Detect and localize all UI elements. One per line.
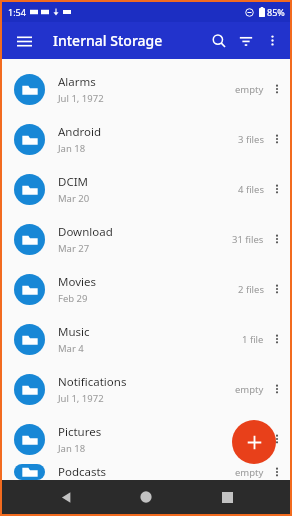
staticText: empty [235,466,264,479]
staticText: Download [58,224,113,240]
staticText: Pictures [58,424,102,440]
button[interactable]: DCIM [2,164,290,214]
button[interactable]: Movies [2,264,290,314]
button[interactable]: Pictures [2,414,290,464]
staticText: 1:54 [8,6,26,18]
staticText: Android [58,124,102,140]
button[interactable]: Home [129,480,163,514]
button[interactable]: More options [259,27,286,54]
staticText: Podcasts [58,464,107,480]
button[interactable]: Back [49,480,83,514]
button[interactable]: Sort and filter [232,27,259,54]
staticText: Movies [58,274,96,290]
staticText: empty [235,383,264,396]
button[interactable]: Download [2,214,290,264]
button[interactable]: Podcasts [2,464,290,480]
button[interactable]: Add new item [232,420,276,464]
staticText: Notifications [58,374,127,390]
button[interactable]: Search [205,27,232,54]
button[interactable]: Options for Notifications [264,364,290,414]
staticText: 85% [267,6,285,18]
staticText: Music [58,324,90,340]
staticText: Mar 20 [58,192,90,205]
staticText: Jul 1, 1972 [58,392,104,405]
staticText: Jan 18 [58,442,86,455]
staticText: Jul 1, 1972 [58,92,104,105]
button[interactable]: Recent apps [210,480,244,514]
button[interactable]: Open navigation drawer [9,26,39,56]
staticText: Jan 18 [58,142,86,155]
staticText: 3 files [238,133,264,146]
staticText: empty [235,83,264,96]
staticText: DCIM [58,174,88,190]
staticText: 1 file [242,333,264,346]
button[interactable]: Options for Alarms [264,64,290,114]
staticText: Mar 27 [58,242,90,255]
staticText: 2 files [238,283,264,296]
button[interactable]: Options for Movies [264,264,290,314]
staticText: 4 files [238,183,264,196]
button[interactable]: Options for Music [264,314,290,364]
button[interactable]: Options for Android [264,114,290,164]
button[interactable]: Music [2,314,290,364]
staticText: 31 files [232,233,264,246]
staticText: Internal Storage [53,31,163,50]
button[interactable]: Alarms [2,64,290,114]
button[interactable]: Notifications [2,364,290,414]
button[interactable]: Options for Podcasts [264,464,290,480]
staticText: Alarms [58,74,96,90]
button[interactable]: Android [2,114,290,164]
staticText: Feb 29 [58,292,88,305]
button[interactable]: Options for Pictures [264,414,290,464]
button[interactable]: Options for Download [264,214,290,264]
staticText: Mar 4 [58,342,84,355]
button[interactable]: Options for DCIM [264,164,290,214]
staticText: 2 files [238,433,264,446]
